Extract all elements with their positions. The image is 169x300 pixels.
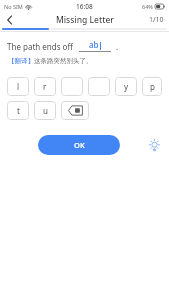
staticText: No SIM bbox=[4, 3, 23, 10]
button[interactable]: Back bbox=[0, 13, 20, 27]
button[interactable]: p bbox=[142, 77, 162, 96]
staticText: 16:08 bbox=[76, 2, 93, 11]
staticText: The path ends off bbox=[7, 41, 73, 52]
staticText: 【翻译】 bbox=[8, 57, 34, 65]
staticText: t bbox=[17, 105, 20, 116]
staticText: u bbox=[43, 105, 48, 116]
button[interactable]: Backspace bbox=[61, 101, 89, 120]
staticText: y bbox=[124, 81, 129, 92]
button[interactable]: u bbox=[34, 101, 56, 120]
staticText: Missing Letter bbox=[56, 14, 114, 26]
staticText: . bbox=[116, 41, 119, 52]
button[interactable]: OK bbox=[38, 135, 120, 155]
button[interactable]: Empty key bbox=[61, 77, 83, 96]
staticText: 64% bbox=[142, 3, 153, 10]
staticText: 这条路突然别头了。 bbox=[34, 57, 93, 65]
staticText: 1/10 bbox=[149, 15, 164, 25]
staticText: OK bbox=[74, 140, 85, 150]
button[interactable]: y bbox=[115, 77, 137, 96]
button[interactable]: l bbox=[7, 77, 29, 96]
staticText: l bbox=[17, 81, 20, 92]
button[interactable]: r bbox=[34, 77, 56, 96]
staticText: r bbox=[43, 81, 47, 92]
button[interactable]: t bbox=[7, 101, 29, 120]
staticText: ab bbox=[89, 39, 99, 50]
staticText: p bbox=[150, 81, 155, 92]
button[interactable]: Empty key bbox=[88, 77, 110, 96]
button[interactable]: Hint bbox=[145, 136, 163, 154]
